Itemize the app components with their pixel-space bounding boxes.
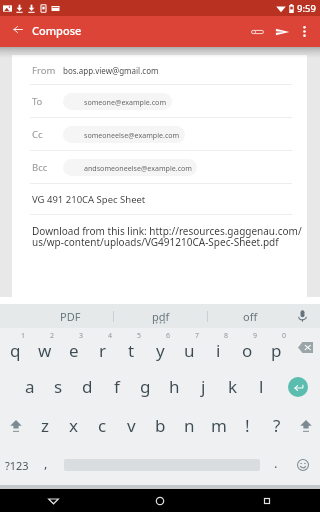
staticText: 8 bbox=[224, 331, 229, 341]
staticText: 5 bbox=[137, 331, 142, 341]
staticText: ?123 bbox=[5, 458, 29, 473]
staticText: 9:59 bbox=[297, 2, 316, 15]
button[interactable]: Voice input bbox=[285, 304, 320, 328]
button[interactable]: Emoji bbox=[286, 445, 320, 485]
button[interactable]: Send bbox=[267, 16, 292, 47]
button[interactable]: 9 bbox=[233, 328, 262, 367]
staticText: Compose bbox=[32, 23, 82, 38]
button[interactable]: Shift bbox=[1, 406, 30, 445]
staticText: e bbox=[69, 339, 79, 362]
button[interactable]: From bbox=[12, 56, 307, 84]
staticText: n bbox=[184, 414, 195, 437]
staticText: k bbox=[228, 375, 238, 398]
button[interactable]: a bbox=[15, 367, 44, 406]
staticText: m bbox=[211, 414, 227, 437]
staticText: ? bbox=[273, 414, 281, 437]
button[interactable]: PDF bbox=[0, 304, 113, 328]
button[interactable]: Back bbox=[0, 489, 106, 512]
staticText: 1 bbox=[21, 331, 26, 341]
button[interactable]: g bbox=[131, 367, 160, 406]
button[interactable]: 0 bbox=[262, 328, 291, 367]
button[interactable]: Space bbox=[58, 445, 266, 485]
button[interactable]: x bbox=[59, 406, 88, 445]
staticText: PDF bbox=[60, 309, 81, 324]
button[interactable]: j bbox=[189, 367, 218, 406]
staticText: w bbox=[38, 339, 52, 362]
staticText: Cc bbox=[32, 128, 43, 141]
button[interactable]: l bbox=[247, 367, 276, 406]
button[interactable]: Shift bbox=[291, 406, 320, 445]
button[interactable]: Download from this link: http://resource… bbox=[12, 215, 307, 249]
button[interactable]: ?123 bbox=[0, 445, 34, 485]
staticText: f bbox=[114, 375, 120, 398]
button[interactable]: Home bbox=[106, 489, 213, 512]
button[interactable]: 6 bbox=[146, 328, 175, 367]
staticText: t bbox=[128, 339, 135, 362]
staticText: p bbox=[271, 339, 282, 362]
button[interactable]: To bbox=[12, 85, 307, 117]
button[interactable]: f bbox=[102, 367, 131, 406]
button[interactable]: pdf bbox=[114, 304, 207, 328]
staticText: , bbox=[44, 454, 48, 472]
button[interactable]: k bbox=[218, 367, 247, 406]
button[interactable]: , bbox=[34, 445, 58, 485]
staticText: z bbox=[41, 414, 49, 437]
button[interactable]: v bbox=[117, 406, 146, 445]
staticText: j bbox=[201, 375, 206, 398]
button[interactable]: z bbox=[30, 406, 59, 445]
staticText: off bbox=[243, 309, 258, 324]
button[interactable]: 5 bbox=[117, 328, 146, 367]
staticText: b bbox=[155, 414, 166, 437]
button[interactable]: Enter bbox=[276, 367, 320, 406]
button[interactable]: h bbox=[160, 367, 189, 406]
staticText: andsomeoneelse@example.com bbox=[84, 163, 192, 173]
button[interactable]: Navigate up bbox=[0, 16, 32, 47]
staticText: bos.app.view@gmail.com bbox=[63, 65, 159, 76]
button[interactable]: . bbox=[266, 445, 286, 485]
staticText: 3 bbox=[79, 331, 84, 341]
button[interactable]: Recent apps bbox=[213, 489, 320, 512]
staticText: o bbox=[242, 339, 253, 362]
staticText: d bbox=[82, 375, 93, 398]
button[interactable]: m bbox=[204, 406, 233, 445]
staticText: Bcc bbox=[32, 161, 48, 174]
staticText: y bbox=[156, 339, 165, 362]
staticText: someoneelse@example.com bbox=[84, 130, 180, 140]
button[interactable]: 8 bbox=[204, 328, 233, 367]
staticText: 9 bbox=[253, 331, 258, 341]
button[interactable]: 4 bbox=[88, 328, 117, 367]
button[interactable]: ? bbox=[262, 406, 291, 445]
staticText: From bbox=[32, 64, 56, 77]
button[interactable]: 1 bbox=[1, 328, 30, 367]
button[interactable]: n bbox=[175, 406, 204, 445]
button[interactable]: More options bbox=[292, 16, 316, 47]
staticText: v bbox=[127, 414, 136, 437]
button[interactable]: off bbox=[208, 304, 285, 328]
staticText: i bbox=[216, 339, 221, 362]
button[interactable]: s bbox=[44, 367, 73, 406]
button[interactable]: Bcc bbox=[12, 151, 307, 183]
staticText: VG 491 210CA Spec Sheet bbox=[32, 193, 146, 206]
button[interactable]: Cc bbox=[12, 118, 307, 150]
staticText: 7 bbox=[195, 331, 200, 341]
button[interactable]: 2 bbox=[30, 328, 59, 367]
staticText: pdf bbox=[152, 309, 170, 324]
staticText: Download from this link: http://resource… bbox=[32, 224, 304, 249]
staticText: To bbox=[32, 95, 43, 108]
button[interactable]: ! bbox=[233, 406, 262, 445]
button[interactable]: c bbox=[88, 406, 117, 445]
staticText: a bbox=[25, 375, 35, 398]
button[interactable]: 3 bbox=[59, 328, 88, 367]
staticText: s bbox=[54, 375, 63, 398]
button[interactable]: VG 491 210CA Spec Sheet bbox=[12, 184, 307, 214]
button[interactable]: b bbox=[146, 406, 175, 445]
button[interactable]: Attach file bbox=[242, 16, 267, 47]
staticText: . bbox=[274, 454, 278, 472]
staticText: g bbox=[140, 375, 151, 398]
button[interactable]: Delete bbox=[291, 328, 320, 367]
staticText: l bbox=[259, 375, 264, 398]
button[interactable]: 7 bbox=[175, 328, 204, 367]
staticText: h bbox=[169, 375, 180, 398]
staticText: ! bbox=[245, 414, 250, 437]
button[interactable]: d bbox=[73, 367, 102, 406]
